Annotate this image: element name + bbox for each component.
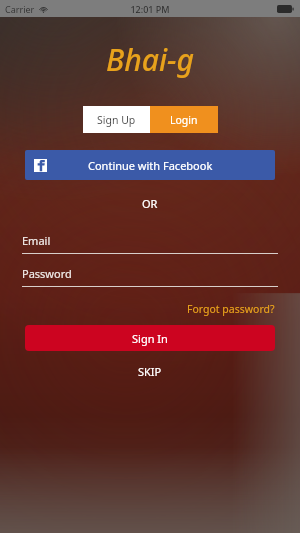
button[interactable]: Sign In [25, 325, 275, 351]
staticText: Bhai-g [106, 39, 195, 80]
staticText: Sign Up [97, 113, 136, 127]
staticText: OR [142, 196, 158, 211]
button[interactable]: Forgot password? [184, 299, 278, 319]
staticText: Login [170, 113, 198, 127]
staticText: SKIP [138, 364, 162, 379]
button[interactable]: Password [22, 266, 278, 287]
staticText: Sign In [132, 331, 168, 346]
staticText: 12:01 PM [130, 3, 170, 15]
button[interactable]: SKIP [134, 360, 166, 383]
staticText: Email [22, 233, 51, 248]
button[interactable]: Sign Up [83, 106, 150, 133]
button[interactable]: Login [150, 106, 218, 133]
button[interactable]: Email [22, 233, 278, 254]
staticText: Forgot password? [187, 302, 275, 316]
staticText: Password [22, 266, 72, 281]
button[interactable]: Continue with Facebook [25, 150, 275, 180]
staticText: Carrier [5, 3, 35, 15]
staticText: Continue with Facebook [88, 158, 213, 173]
